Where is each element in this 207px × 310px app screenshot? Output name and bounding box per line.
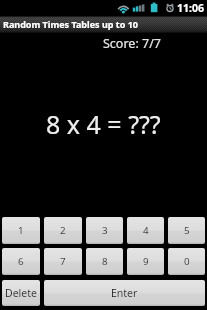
- button[interactable]: 0: [168, 248, 205, 275]
- staticText: 0: [184, 255, 190, 268]
- staticText: 8: [102, 255, 108, 268]
- button[interactable]: 7: [44, 248, 82, 275]
- button[interactable]: 9: [127, 248, 164, 275]
- staticText: 7: [60, 255, 66, 268]
- staticText: 8 x 4 = ???: [46, 107, 161, 141]
- staticText: 9: [143, 255, 149, 268]
- staticText: 3: [102, 224, 108, 237]
- staticText: Enter: [111, 286, 138, 300]
- staticText: 6: [18, 255, 24, 268]
- staticText: Score: 7/7: [103, 35, 161, 52]
- staticText: Delete: [5, 286, 37, 300]
- staticText: Random Times Tables up to 10: [3, 18, 138, 30]
- button[interactable]: 1: [2, 217, 40, 244]
- staticText: 2: [60, 224, 66, 237]
- staticText: 1: [18, 224, 24, 237]
- button[interactable]: Delete: [2, 280, 40, 306]
- button[interactable]: 5: [168, 217, 205, 244]
- staticText: 5: [184, 224, 190, 237]
- button[interactable]: 4: [127, 217, 164, 244]
- button[interactable]: 3: [86, 217, 123, 244]
- staticText: 4: [143, 224, 149, 237]
- button[interactable]: 6: [2, 248, 40, 275]
- button[interactable]: Enter: [44, 280, 205, 306]
- button[interactable]: 8: [86, 248, 123, 275]
- button[interactable]: 2: [44, 217, 82, 244]
- staticText: 11:06: [177, 1, 204, 15]
